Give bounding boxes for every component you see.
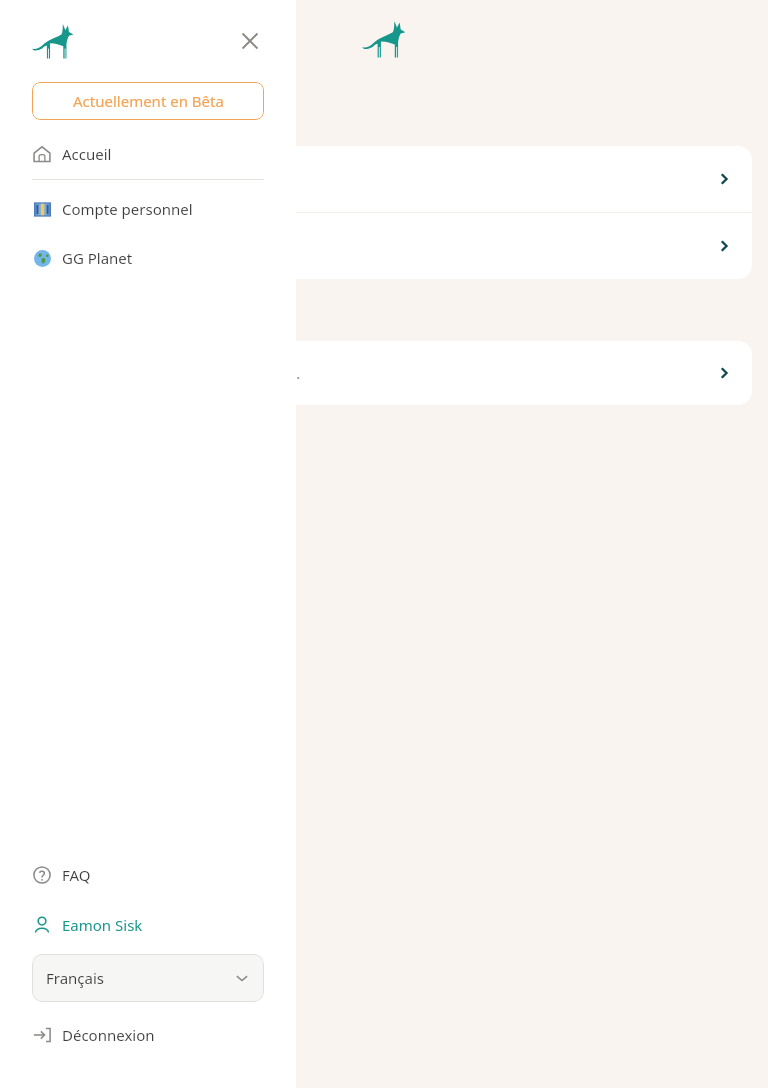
staticText: GG Planet <box>62 248 133 268</box>
button[interactable] <box>16 213 752 279</box>
button[interactable]: GG Planet <box>32 241 264 275</box>
button[interactable]: Compte personnel <box>32 192 264 226</box>
button[interactable]: Eamon Sisk <box>32 908 264 942</box>
staticText: Actuellement en Bêta <box>73 91 224 111</box>
button[interactable]: Actuellement en Bêta <box>32 82 264 120</box>
button[interactable]: Fermer <box>236 27 264 55</box>
staticText: FAQ <box>62 865 91 885</box>
staticText: Eamon Sisk <box>62 915 143 935</box>
button[interactable]: Français <box>32 954 264 1002</box>
button[interactable] <box>16 146 752 212</box>
button[interactable]: Déconnexion <box>32 1018 264 1052</box>
staticText: Compte personnel <box>62 199 193 219</box>
button[interactable]: Obtenez l'aide dont vous avez besoin. <box>16 341 752 405</box>
staticText: Français <box>46 968 105 988</box>
button[interactable]: FAQ <box>32 858 264 892</box>
button[interactable]: Accueil <box>32 137 264 171</box>
staticText: Accueil <box>62 144 112 164</box>
staticText: Déconnexion <box>62 1025 155 1045</box>
button[interactable]: Menu <box>14 23 42 51</box>
